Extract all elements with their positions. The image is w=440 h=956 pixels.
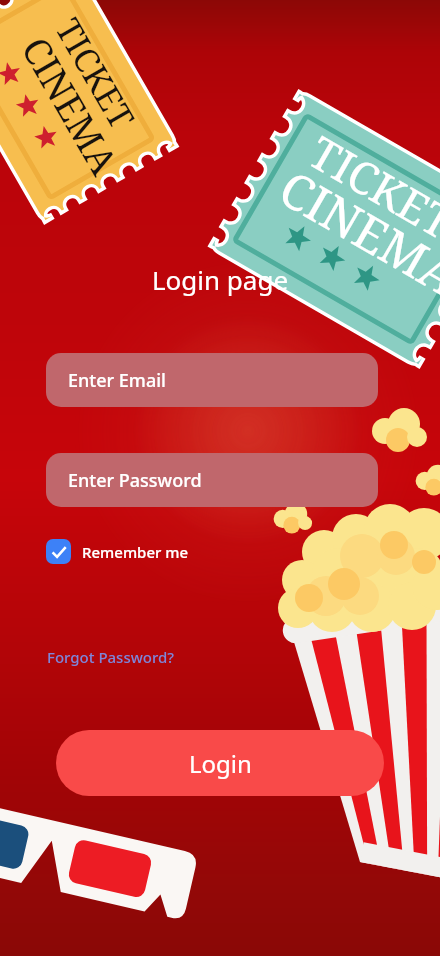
button[interactable]: Forgot Password?: [47, 647, 175, 667]
staticText: Enter Password: [68, 468, 202, 493]
button[interactable]: Enter Password: [46, 453, 378, 507]
staticText: Enter Email: [68, 368, 166, 393]
button[interactable]: Login: [56, 730, 384, 796]
staticText: Forgot Password?: [47, 647, 175, 667]
staticText: Remember me: [82, 542, 189, 562]
button[interactable]: Remember me: [46, 539, 189, 564]
staticText: Login page: [0, 262, 440, 297]
button[interactable]: Enter Email: [46, 353, 378, 407]
staticText: Login: [189, 747, 252, 780]
